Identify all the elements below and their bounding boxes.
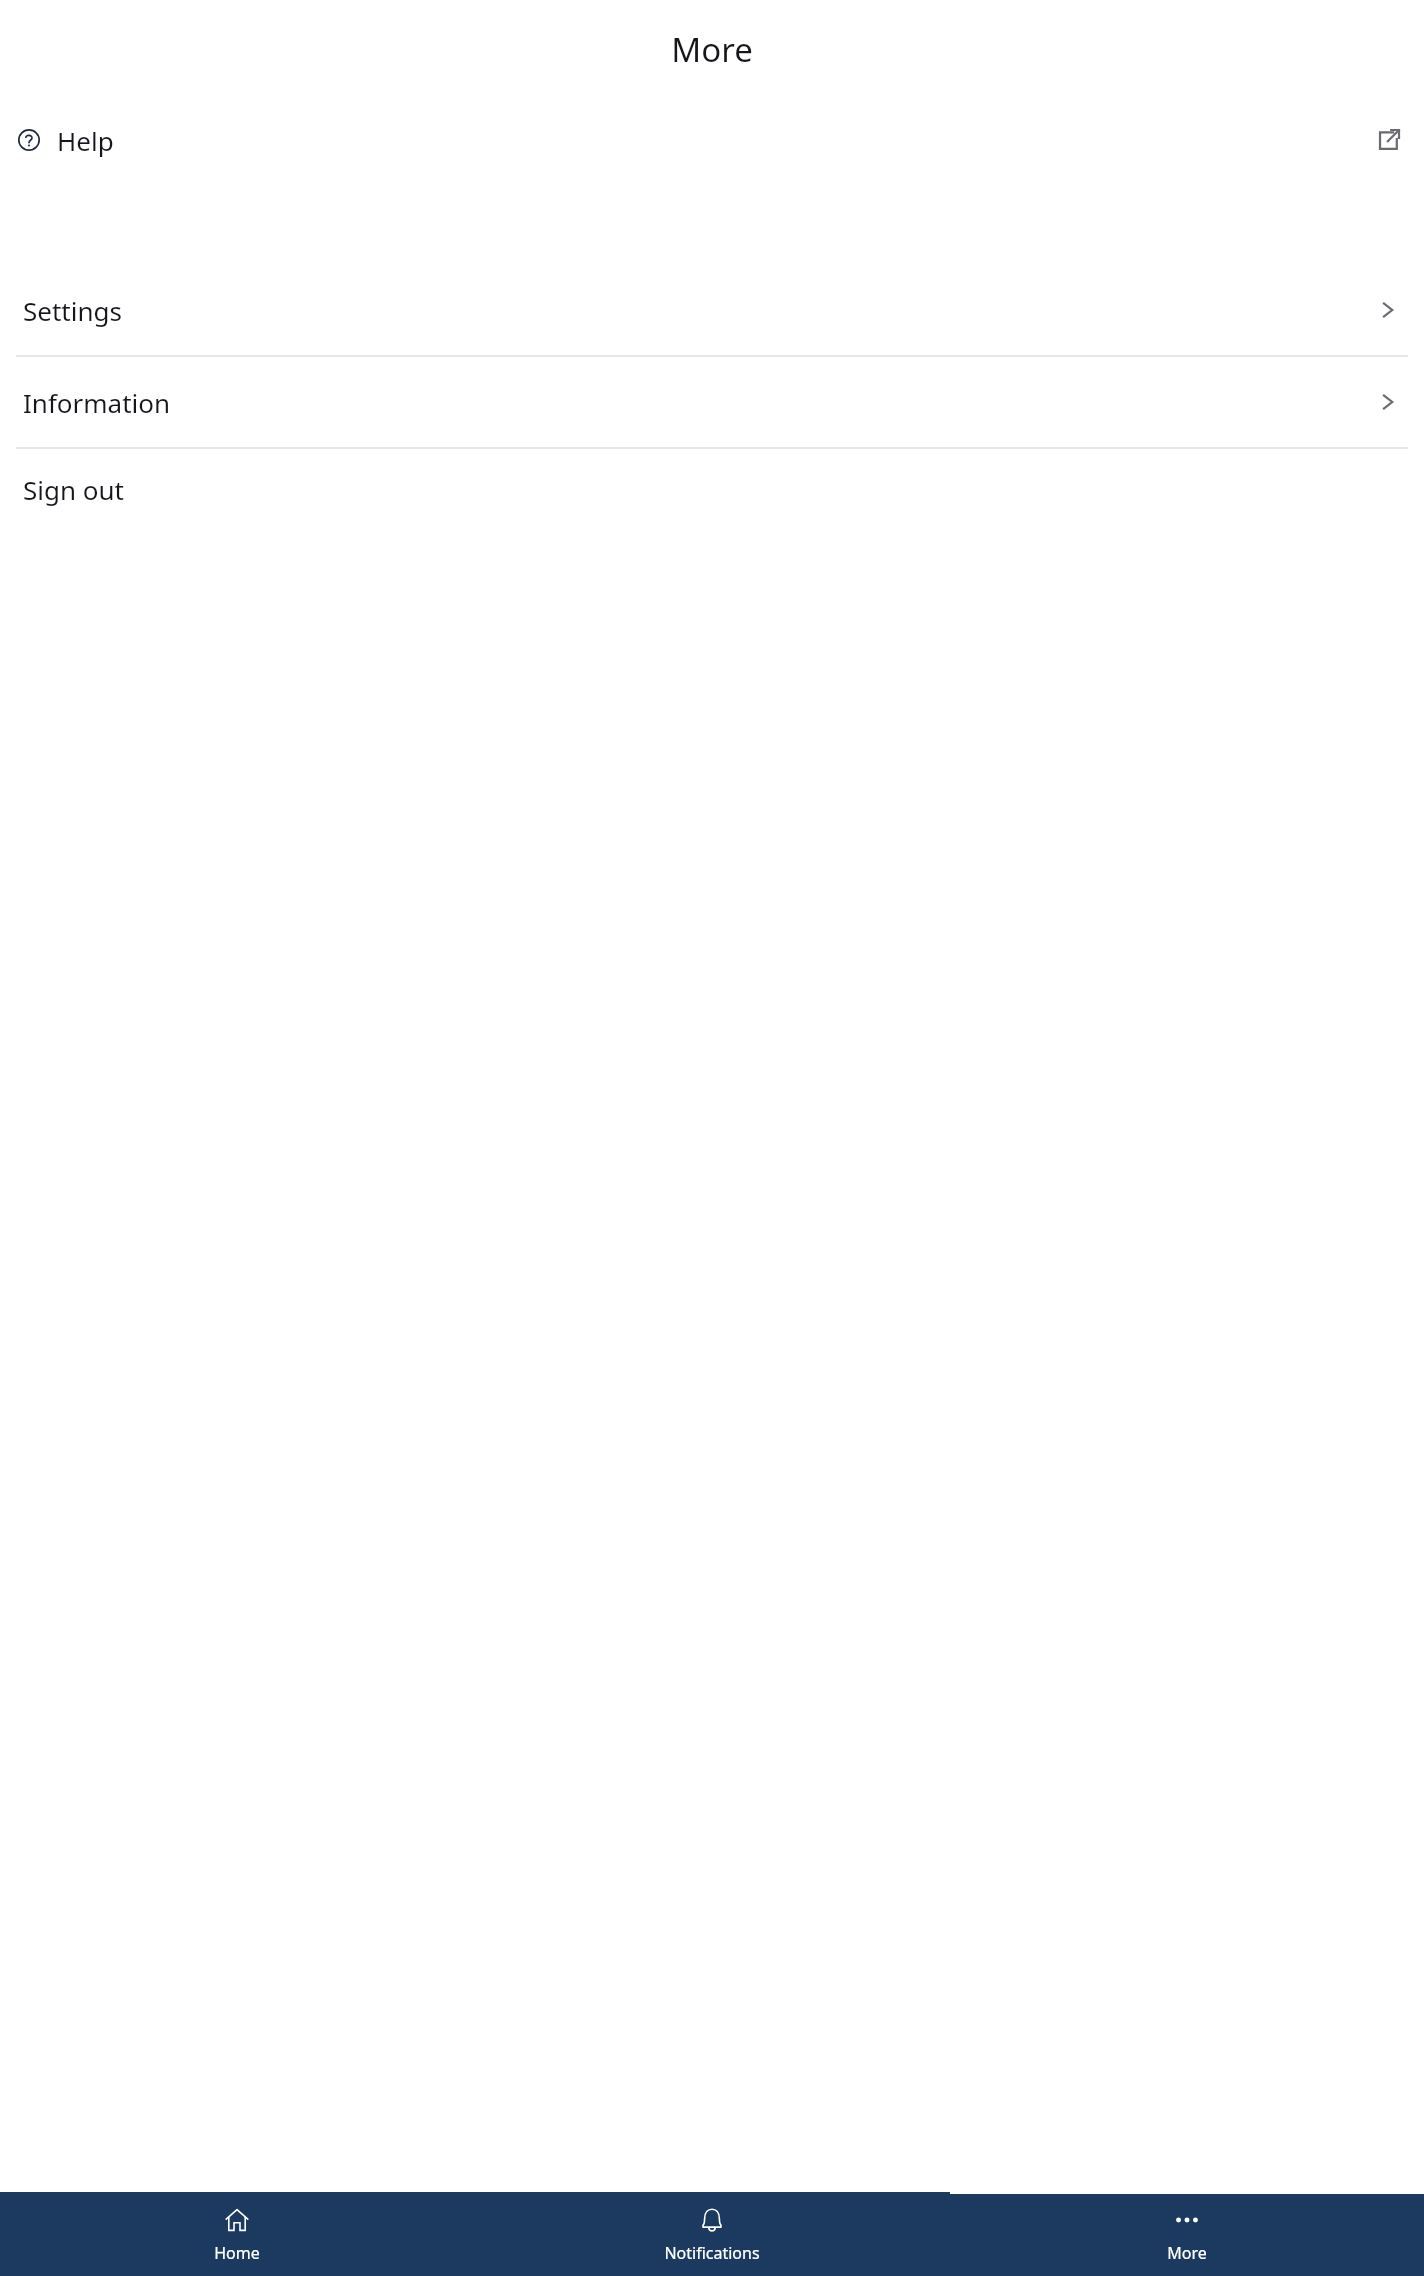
staticText: Home xyxy=(214,2242,260,2264)
button[interactable]: Sign out xyxy=(0,449,1424,529)
staticText: More xyxy=(671,27,753,72)
button[interactable]: Settings xyxy=(0,265,1424,355)
button[interactable]: More xyxy=(949,2192,1424,2276)
button[interactable]: Notifications xyxy=(474,2192,949,2276)
staticText: Information xyxy=(23,385,171,420)
other: Open help in browser xyxy=(1376,127,1402,153)
staticText: Sign out xyxy=(23,472,124,507)
staticText: Notifications xyxy=(664,2242,760,2264)
button[interactable]: Home xyxy=(0,2192,474,2276)
staticText: Help xyxy=(57,123,114,158)
button[interactable]: Help xyxy=(0,98,1424,182)
button[interactable]: Information xyxy=(0,357,1424,447)
staticText: Settings xyxy=(23,293,122,328)
staticText: More xyxy=(1167,2242,1207,2264)
